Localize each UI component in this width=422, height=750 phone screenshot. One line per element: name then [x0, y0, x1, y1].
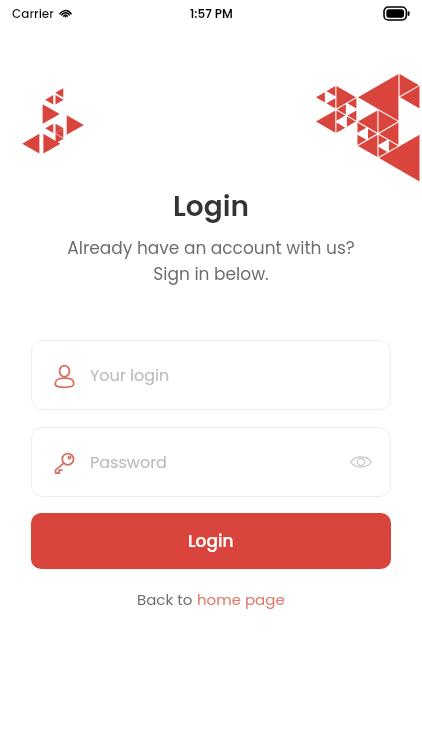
button[interactable]: Your login	[31, 340, 391, 410]
button[interactable]: Login	[31, 513, 391, 569]
staticText: Login	[0, 187, 422, 226]
staticText: 1:57 PM	[190, 5, 233, 22]
staticText: Login	[188, 529, 234, 553]
staticText: Already have an account with us? Sign in…	[0, 236, 422, 286]
staticText: home page	[197, 589, 285, 610]
staticText: Password	[90, 451, 167, 473]
button[interactable]: Password	[31, 427, 391, 497]
staticText: Carrier	[12, 5, 54, 22]
staticText: Your login	[90, 364, 170, 386]
button[interactable]: Show password	[349, 450, 373, 474]
staticText: Back to	[137, 589, 197, 610]
button[interactable]: home page	[197, 589, 285, 610]
